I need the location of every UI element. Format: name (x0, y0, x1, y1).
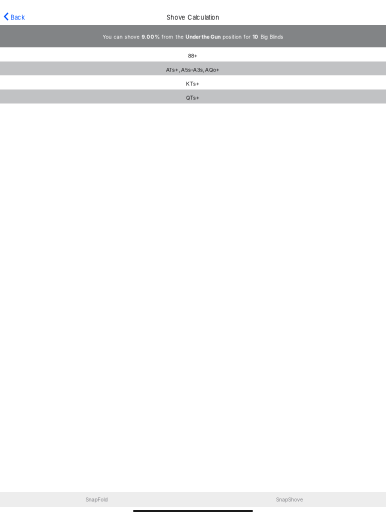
button[interactable]: Back (0, 8, 31, 25)
button[interactable]: QTs+ (0, 89, 386, 103)
staticText: QTs+ (186, 94, 200, 101)
staticText: Back (11, 14, 25, 21)
staticText: SnapFold (85, 496, 107, 503)
staticText: SnapShove (276, 496, 303, 503)
staticText: 88+ (188, 52, 198, 59)
staticText: ATs+,A5s-A3s,AQo+ (166, 66, 220, 73)
button[interactable]: ATs+,A5s-A3s,AQo+ (0, 61, 386, 75)
button[interactable]: SnapShove (193, 492, 386, 507)
button[interactable]: SnapFold (0, 492, 193, 507)
staticText: You can shove 9.00% from the Under the G… (102, 34, 283, 40)
button[interactable]: 88+ (0, 47, 386, 61)
button[interactable]: KTs+ (0, 75, 386, 89)
staticText: KTs+ (186, 80, 200, 87)
staticText: Shove Calculation (166, 14, 219, 21)
